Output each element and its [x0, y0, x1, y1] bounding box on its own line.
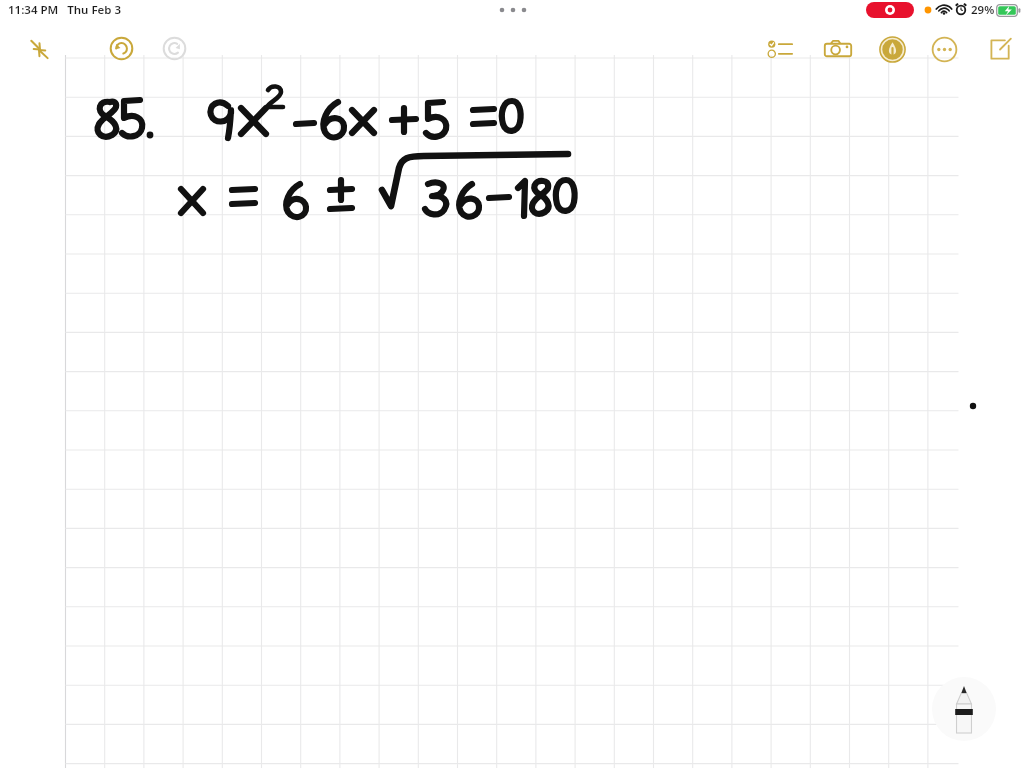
button[interactable]: Camera [816, 30, 860, 68]
staticText: 29% [971, 2, 995, 18]
button[interactable]: Collapse [20, 31, 58, 67]
staticText: 11:34 PM Thu Feb 3 [8, 2, 122, 18]
button[interactable]: Checklist [760, 31, 802, 67]
button[interactable]: Redo [154, 29, 195, 68]
button[interactable]: More options [924, 30, 965, 69]
button[interactable]: Compose [979, 30, 1020, 69]
button[interactable]: Undo [101, 29, 142, 68]
button[interactable]: Pen tool [932, 677, 996, 741]
button[interactable]: Marker [871, 29, 914, 70]
